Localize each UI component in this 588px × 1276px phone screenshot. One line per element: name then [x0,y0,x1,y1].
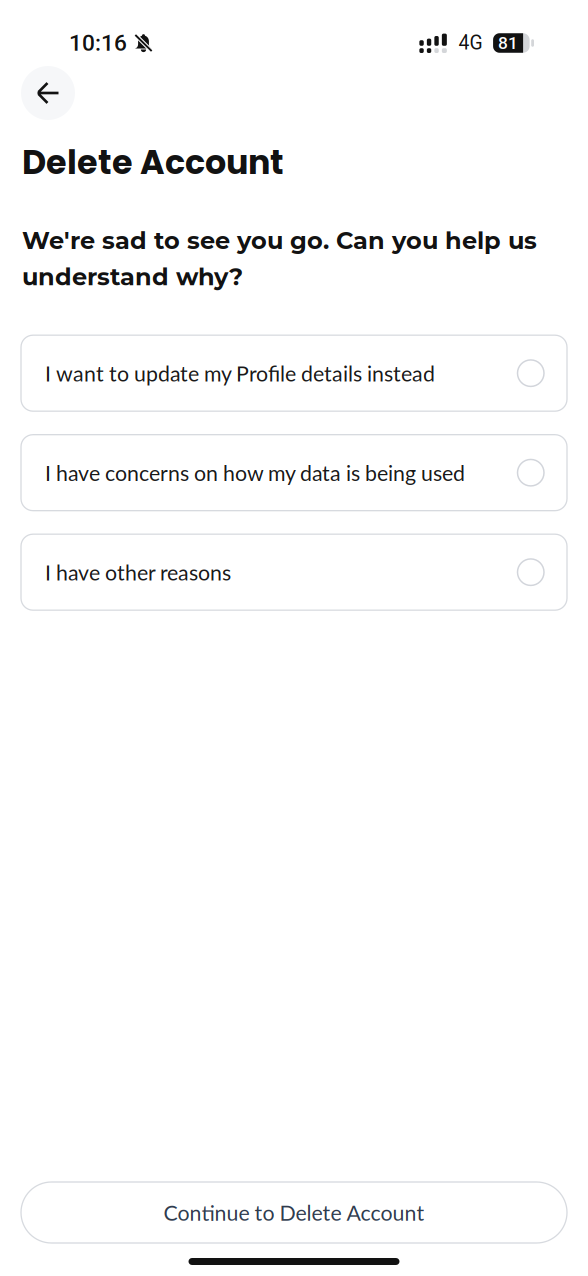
button[interactable]: Continue to Delete Account [21,1182,567,1243]
button[interactable]: Back [21,66,75,120]
staticText: 4G [459,32,483,54]
staticText: 81 [498,33,518,53]
button[interactable]: I have concerns on how my data is being … [21,435,567,511]
staticText: I have other reasons [45,559,231,585]
staticText: Continue to Delete Account [163,1200,424,1225]
staticText: I have concerns on how my data is being … [45,460,465,485]
staticText: We're sad to see you go. Can you help us… [22,226,537,291]
staticText: 10:16 [69,30,127,56]
button[interactable]: I have other reasons [21,534,567,610]
button[interactable]: I want to update my Profile details inst… [21,335,567,411]
staticText: Delete Account [22,139,284,186]
staticText: I want to update my Profile details inst… [45,360,435,386]
